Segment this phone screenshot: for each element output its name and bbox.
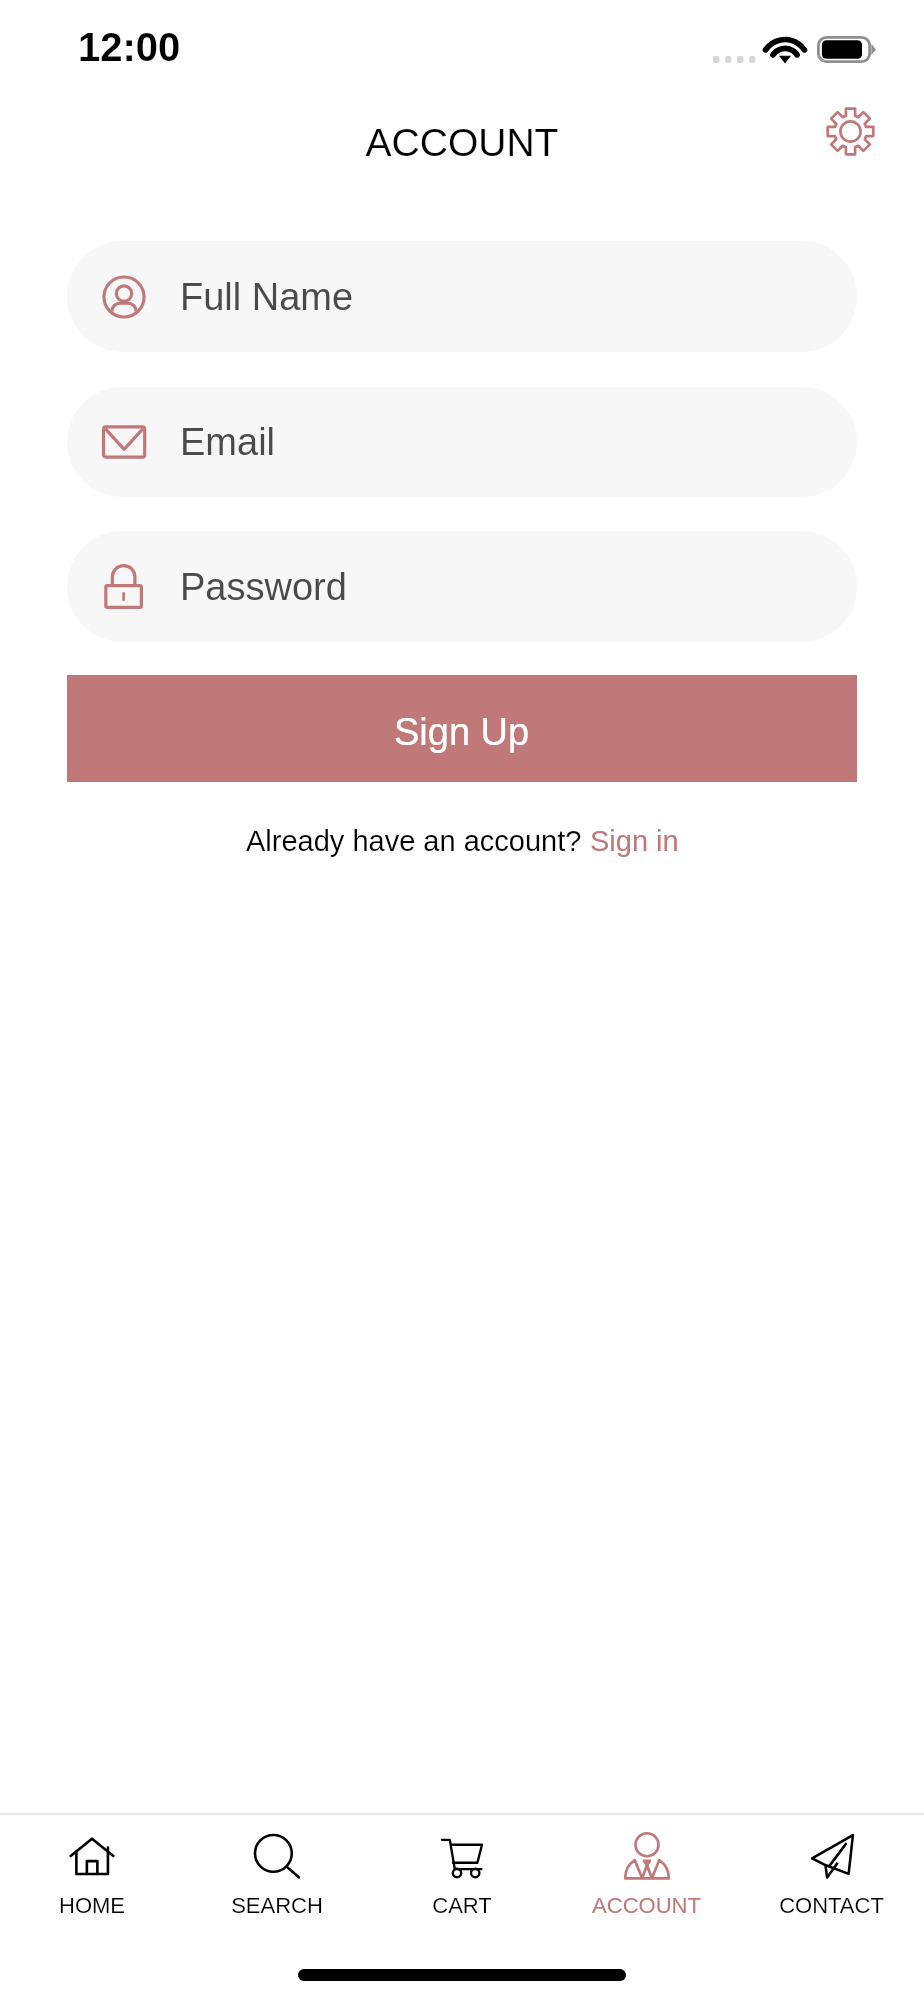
staticText: Sign Up [394, 711, 530, 753]
staticText: CART [432, 1893, 492, 1918]
button[interactable]: HOME [0, 1832, 184, 1932]
button[interactable]: Email [67, 387, 857, 497]
staticText: SEARCH [231, 1893, 323, 1918]
staticText: 12:00 [78, 25, 181, 70]
staticText: HOME [59, 1893, 125, 1918]
staticText: ACCOUNT [592, 1893, 701, 1918]
button[interactable]: Full Name [67, 241, 857, 352]
staticText: Sign in [590, 825, 679, 857]
staticText: Full Name [180, 276, 354, 318]
button[interactable]: Settings [818, 99, 882, 163]
button[interactable]: Sign in [590, 825, 679, 857]
button[interactable]: CONTACT [739, 1832, 924, 1932]
staticText: Already have an account? [246, 825, 590, 857]
staticText: Email [180, 421, 276, 463]
staticText: CONTACT [779, 1893, 884, 1918]
staticText: Password [180, 566, 347, 608]
button[interactable]: SEARCH [184, 1832, 369, 1932]
button[interactable]: Password [67, 531, 857, 642]
button[interactable]: Sign Up [67, 675, 857, 782]
staticText: ACCOUNT [0, 121, 924, 165]
button[interactable]: CART [369, 1832, 554, 1932]
button[interactable]: ACCOUNT [554, 1832, 739, 1932]
